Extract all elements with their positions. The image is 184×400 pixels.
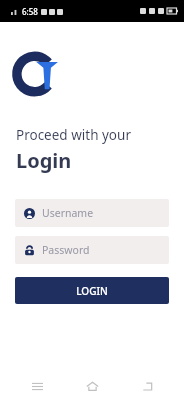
button[interactable]: Home	[74, 372, 110, 400]
button[interactable]: LOGIN	[15, 277, 169, 304]
button[interactable]: Password	[15, 236, 169, 264]
staticText: Password	[42, 243, 90, 257]
staticText: LOGIN	[76, 284, 108, 298]
staticText: Login	[16, 147, 72, 174]
staticText: Username	[42, 206, 94, 220]
button[interactable]: Recent apps	[19, 372, 55, 400]
staticText: 6:58	[22, 6, 38, 17]
staticText: Proceed with your	[16, 126, 131, 144]
button[interactable]: Username	[15, 199, 169, 227]
button[interactable]: Back	[129, 372, 165, 400]
